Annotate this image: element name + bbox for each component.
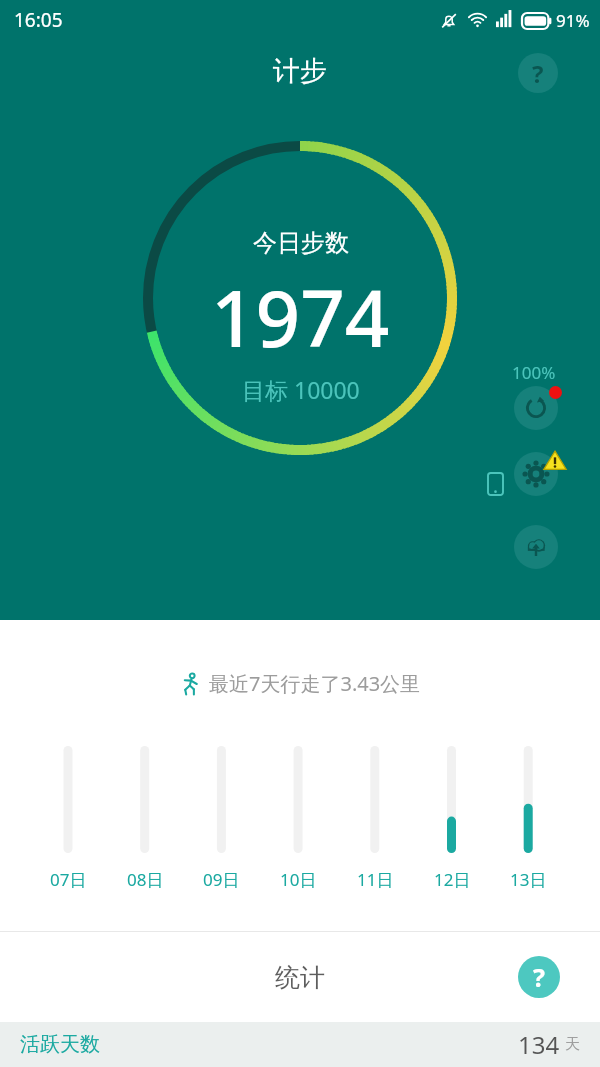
staticText: 100%: [512, 361, 556, 384]
staticText: 目标 10000: [242, 374, 360, 405]
button[interactable]: 统计: [0, 932, 600, 1022]
staticText: 91%: [556, 9, 590, 32]
staticText: 07日: [50, 868, 87, 891]
button[interactable]: Help: [518, 53, 558, 93]
button[interactable]: Settings: [514, 452, 558, 496]
staticText: 今日步数: [253, 228, 349, 258]
staticText: 天: [565, 1035, 580, 1054]
button[interactable]: 活跃天数: [0, 1022, 600, 1067]
staticText: 1974: [211, 264, 390, 370]
staticText: 活跃天数: [20, 1032, 100, 1057]
staticText: 09日: [203, 868, 240, 891]
staticText: 计步: [273, 54, 327, 88]
staticText: ?: [532, 57, 544, 90]
staticText: 最近7天行走了3.43公里: [209, 670, 421, 697]
button[interactable]: Help about statistics: [518, 956, 560, 998]
staticText: 统计: [275, 962, 325, 993]
button[interactable]: Upload to cloud: [514, 525, 558, 569]
staticText: 08日: [127, 868, 164, 891]
staticText: 13日: [510, 868, 547, 891]
staticText: 134: [518, 1028, 560, 1061]
staticText: ?: [533, 960, 545, 994]
staticText: 16:05: [14, 7, 63, 33]
staticText: 10日: [280, 868, 317, 891]
button[interactable]: Sync now: [514, 386, 558, 430]
staticText: 11日: [357, 868, 394, 891]
staticText: 12日: [434, 868, 471, 891]
